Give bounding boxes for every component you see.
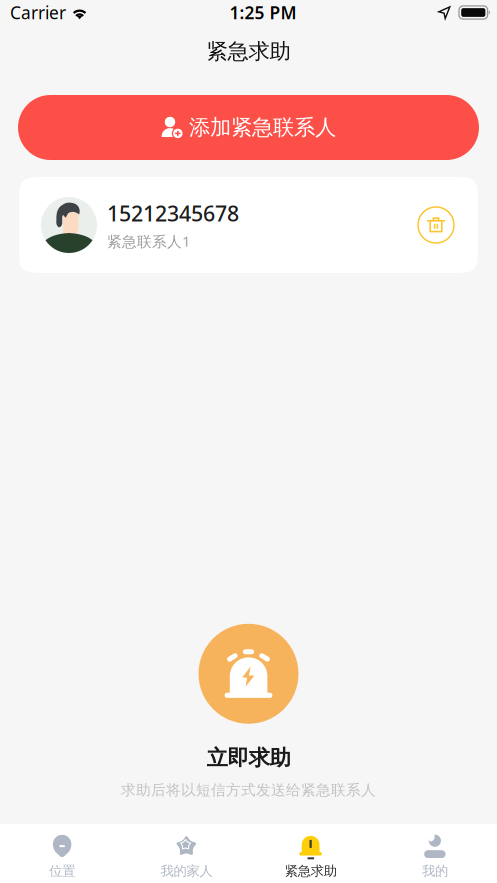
- button[interactable]: 位置: [0, 824, 124, 883]
- staticText: 我的家人: [160, 863, 212, 879]
- button[interactable]: 立即求助: [121, 624, 376, 799]
- button[interactable]: 添加紧急联系人: [18, 95, 479, 160]
- button[interactable]: 我的: [373, 824, 497, 883]
- button[interactable]: 我的家人: [124, 824, 248, 883]
- staticText: 位置: [49, 863, 75, 879]
- staticText: 紧急求助: [206, 38, 290, 65]
- button[interactable]: 15212345678: [19, 177, 478, 273]
- staticText: 立即求助: [206, 745, 290, 771]
- staticText: 添加紧急联系人: [189, 114, 336, 141]
- staticText: 紧急联系人1: [107, 231, 190, 251]
- staticText: 求助后将以短信方式发送给紧急联系人: [121, 781, 376, 799]
- staticText: 我的: [422, 863, 448, 879]
- staticText: 15212345678: [107, 199, 239, 227]
- staticText: 紧急求助: [285, 863, 337, 879]
- button[interactable]: 紧急求助: [248, 824, 373, 883]
- staticText: Carrier: [10, 1, 66, 24]
- staticText: 1:25 PM: [229, 1, 296, 24]
